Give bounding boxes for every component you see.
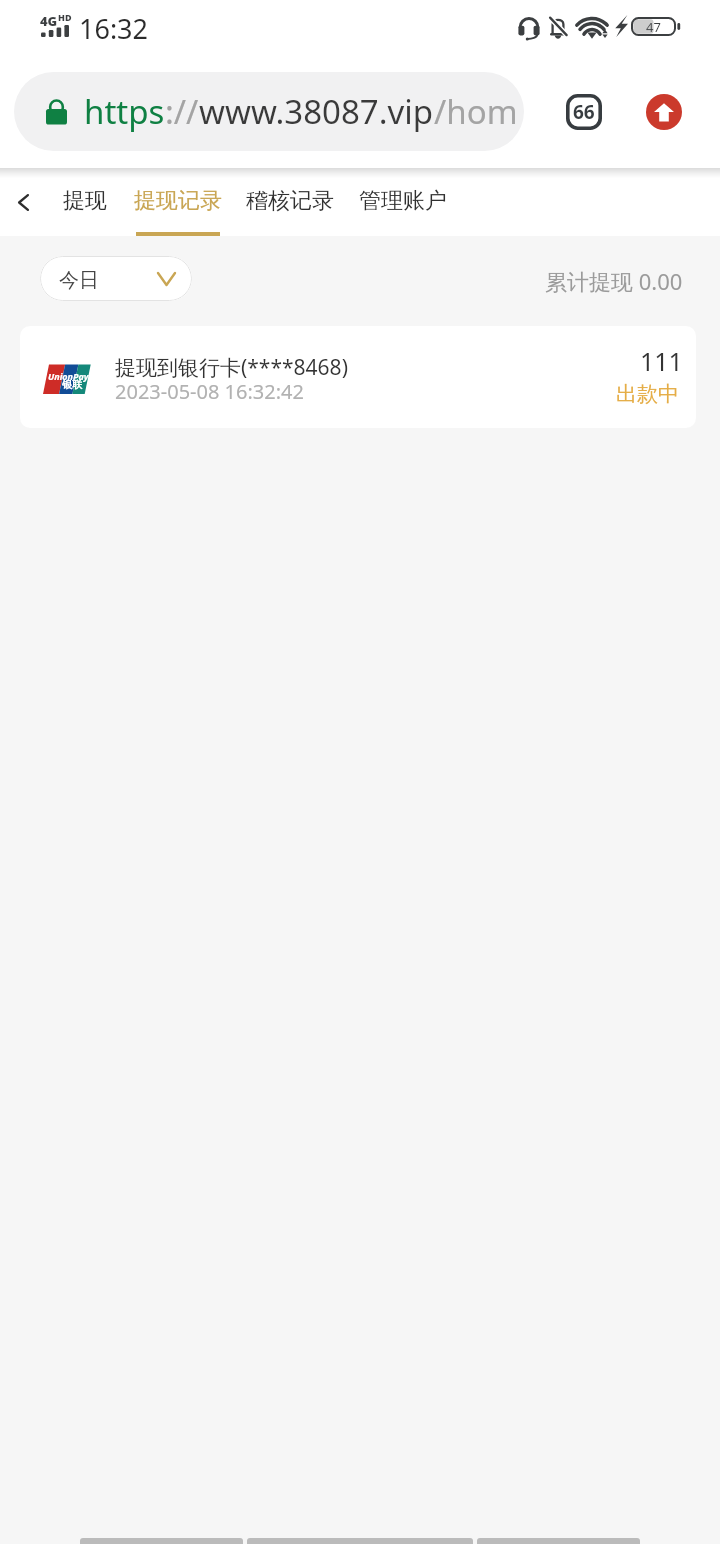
button[interactable]: 提现	[51, 168, 119, 236]
button[interactable]: 稽核记录	[234, 168, 346, 236]
staticText: 16:32	[79, 10, 149, 47]
staticText: 管理账户	[359, 187, 447, 215]
button[interactable]: 提现记录	[123, 168, 233, 236]
staticText: 111	[640, 344, 683, 378]
staticText: ://	[165, 89, 199, 134]
staticText: 提现到银行卡(****8468)	[115, 353, 348, 382]
staticText: 66	[573, 99, 595, 125]
staticText: /hom	[434, 89, 518, 134]
staticText: www.38087.vip	[199, 89, 434, 134]
button[interactable]: Back	[1, 168, 45, 236]
button[interactable]: Tabs	[562, 90, 606, 134]
button[interactable]: 今日	[40, 256, 192, 301]
button[interactable]: UnionPay	[20, 326, 696, 428]
staticText: UnionPay	[48, 370, 89, 382]
staticText: 4G	[40, 12, 58, 30]
staticText: 47	[646, 18, 661, 36]
staticText: 累计提现 0.00	[545, 266, 683, 296]
staticText: 提现记录	[134, 187, 222, 215]
staticText: 提现	[63, 187, 107, 215]
button[interactable]: https	[14, 72, 524, 151]
staticText: 银联	[62, 378, 82, 391]
staticText: 今日	[59, 268, 99, 293]
staticText: https	[84, 89, 165, 134]
staticText: 稽核记录	[246, 187, 334, 215]
button[interactable]: 管理账户	[347, 168, 459, 236]
staticText: 出款中	[616, 381, 679, 407]
staticText: 2023-05-08 16:32:42	[115, 378, 304, 405]
button[interactable]: Upload page	[646, 94, 682, 130]
staticText: HD	[58, 11, 72, 23]
